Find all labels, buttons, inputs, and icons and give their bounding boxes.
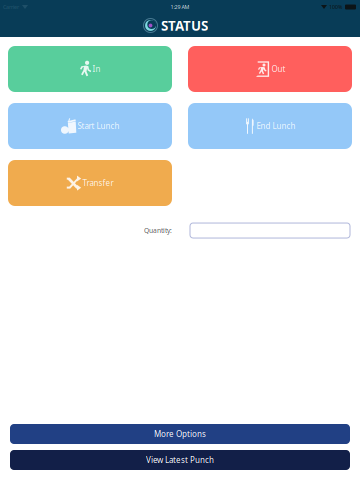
staticText: End Lunch	[256, 121, 295, 131]
staticText: 1:29 AM	[170, 3, 189, 11]
staticText: In	[92, 64, 100, 74]
staticText: 100%	[329, 3, 342, 11]
staticText: More Options	[154, 429, 206, 439]
staticText: View Latest Punch	[146, 455, 214, 465]
staticText: STATUS	[161, 17, 208, 34]
button[interactable]: Start Lunch	[8, 103, 172, 149]
button[interactable]: Transfer	[8, 160, 172, 206]
button[interactable]: In	[8, 46, 172, 92]
button[interactable]: More Options	[10, 424, 350, 444]
button[interactable]: View Latest Punch	[10, 450, 350, 470]
staticText: Transfer	[82, 178, 113, 188]
staticText: Carrier	[3, 3, 19, 11]
button[interactable]: Out	[188, 46, 352, 92]
staticText: Quantity:	[144, 226, 172, 235]
staticText: Start Lunch	[77, 121, 119, 131]
staticText: Out	[271, 64, 285, 74]
button[interactable]: End Lunch	[188, 103, 352, 149]
